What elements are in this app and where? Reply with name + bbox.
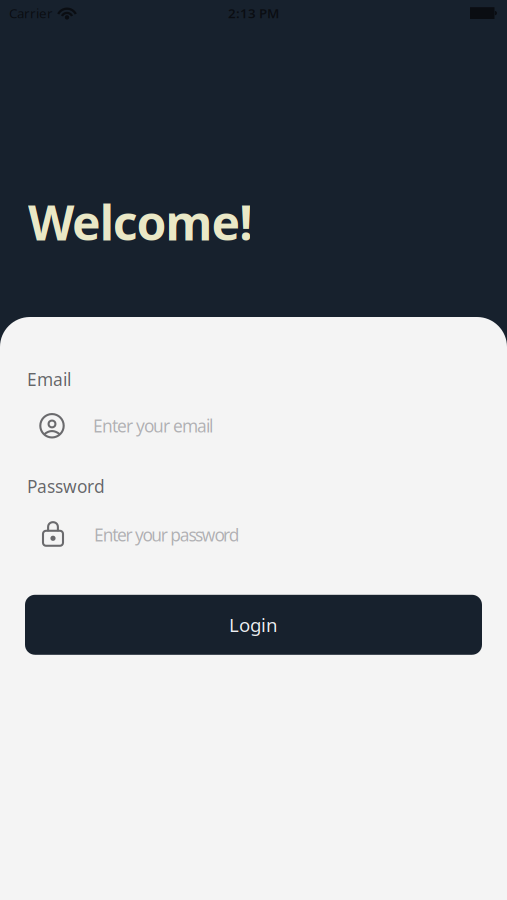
staticText: Carrier: [9, 4, 53, 22]
staticText: Enter your email: [93, 414, 213, 437]
button[interactable]: Login: [25, 595, 482, 655]
staticText: Welcome!: [28, 190, 253, 254]
staticText: 2:13 PM: [228, 4, 279, 22]
button[interactable]: Email text field: [0, 413, 507, 439]
button[interactable]: Password text field: [0, 521, 507, 547]
staticText: Login: [229, 612, 278, 637]
staticText: Enter your password: [94, 523, 240, 546]
staticText: Email: [27, 368, 71, 391]
staticText: Password: [27, 475, 105, 498]
